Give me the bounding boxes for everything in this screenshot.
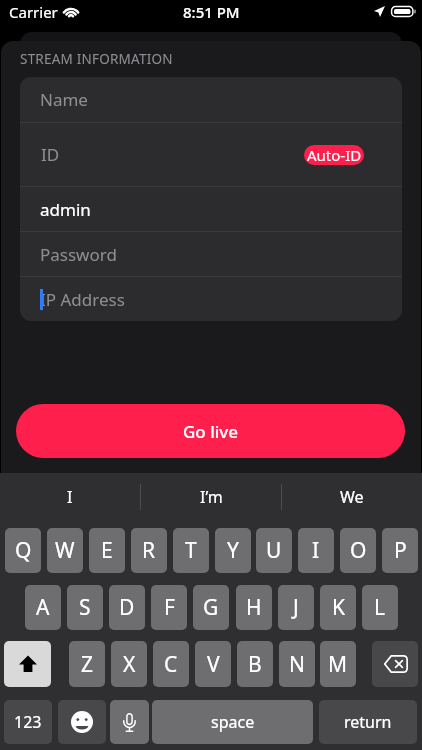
staticText: return [344,711,392,733]
staticText: V [207,650,220,679]
button[interactable]: IP Address [20,277,402,321]
button[interactable]: Z [69,641,105,687]
staticText: C [164,650,178,679]
staticText: P [394,536,407,565]
button[interactable]: E [89,528,125,573]
staticText: O [350,536,367,565]
button[interactable]: U [256,528,292,573]
staticText: J [293,593,299,622]
staticText: I’m [200,486,223,508]
button[interactable]: F [151,585,187,630]
staticText: A [36,593,50,622]
button[interactable]: 123 [4,700,52,744]
staticText: I [67,486,73,508]
staticText: N [289,650,305,679]
staticText: 123 [14,711,42,733]
staticText: ID [41,143,60,166]
staticText: 8:51 PM [183,2,240,22]
button[interactable]: ID [20,123,402,186]
staticText: K [332,593,345,622]
button[interactable]: K [320,585,356,630]
staticText: IP Address [40,288,125,311]
button[interactable]: H [236,585,272,630]
button[interactable]: X [111,641,147,687]
button[interactable]: T [173,528,209,573]
button[interactable]: A [25,585,61,630]
staticText: STREAM INFORMATION [20,50,173,68]
button[interactable]: N [279,641,315,687]
button[interactable]: Auto-ID [304,145,364,165]
staticText: F [164,593,175,622]
button[interactable]: Dictation [110,700,149,744]
staticText: I [312,536,320,565]
button[interactable]: G [193,585,229,630]
staticText: U [266,536,282,565]
button[interactable]: I [0,473,140,521]
button[interactable]: space [152,700,313,744]
button[interactable]: L [362,585,398,630]
staticText: Carrier [9,2,58,22]
staticText: M [328,650,348,679]
button[interactable]: I [298,528,334,573]
button[interactable]: B [237,641,273,687]
staticText: R [142,536,156,565]
button[interactable]: O [340,528,376,573]
staticText: Name [40,88,88,111]
button[interactable]: Q [5,528,41,573]
staticText: G [203,593,219,622]
staticText: space [211,711,255,733]
staticText: X [123,650,136,679]
staticText: S [79,593,91,622]
button[interactable]: M [320,641,356,687]
button[interactable]: Emoji [58,700,106,744]
button[interactable]: J [278,585,314,630]
staticText: Z [81,650,94,679]
staticText: L [374,593,386,622]
staticText: Go live [183,420,239,443]
staticText: Password [40,243,117,266]
button[interactable]: C [153,641,189,687]
button[interactable]: I’m [141,473,281,521]
button[interactable]: Shift [4,641,51,687]
button[interactable]: We [282,473,422,521]
button[interactable]: W [47,528,83,573]
button[interactable]: Password [20,232,402,276]
staticText: We [340,486,364,508]
button[interactable]: Name [20,77,402,122]
staticText: W [55,536,75,565]
staticText: T [185,536,197,565]
button[interactable]: return [319,700,417,744]
staticText: H [246,593,262,622]
staticText: Y [227,536,239,565]
staticText: D [119,593,135,622]
staticText: admin [40,198,91,221]
button[interactable]: Delete [372,641,418,687]
button[interactable]: Go live [16,404,405,458]
staticText: E [101,536,113,565]
button[interactable]: admin [20,187,402,231]
button[interactable]: V [195,641,231,687]
button[interactable]: D [109,585,145,630]
staticText: B [248,650,262,679]
button[interactable]: P [382,528,418,573]
staticText: Auto-ID [307,145,362,165]
button[interactable]: S [67,585,103,630]
button[interactable]: R [131,528,167,573]
button[interactable]: Y [215,528,251,573]
staticText: Q [15,536,32,565]
